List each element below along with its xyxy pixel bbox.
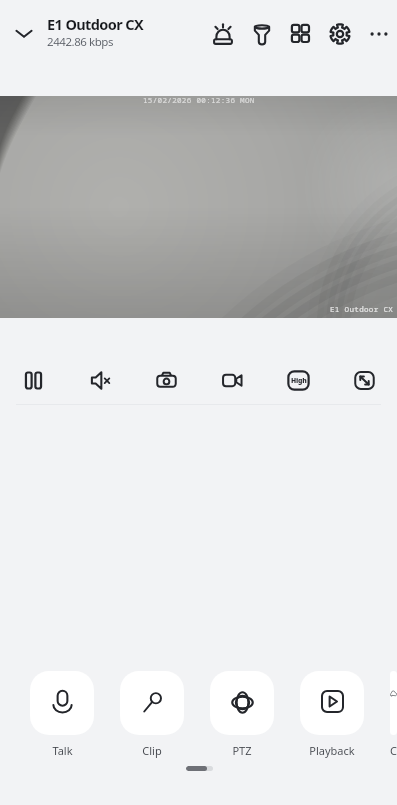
staticText: Cloud — [390, 743, 397, 758]
button[interactable]: Flashlight — [242, 14, 281, 53]
staticText: PTZ — [232, 743, 252, 758]
staticText: E1 Outdoor CX — [47, 14, 144, 34]
button[interactable]: Record — [199, 354, 265, 406]
staticText: 15/02/2026 00:12:36 MON — [143, 96, 255, 105]
button[interactable]: More options — [359, 14, 397, 53]
button[interactable]: Collapse — [6, 16, 42, 52]
button[interactable]: Pause — [0, 354, 67, 406]
button[interactable] — [210, 671, 274, 735]
staticText: Clip — [142, 743, 162, 758]
button[interactable] — [390, 671, 397, 735]
button[interactable]: Stream quality High — [265, 354, 331, 406]
button[interactable]: Settings — [320, 14, 359, 53]
button[interactable]: Fullscreen — [331, 354, 397, 406]
button[interactable] — [30, 671, 94, 735]
button[interactable]: Snapshot — [133, 354, 199, 406]
staticText: High — [291, 376, 307, 385]
staticText: Playback — [309, 743, 355, 758]
button[interactable] — [120, 671, 184, 735]
staticText: 2442.86 kbps — [47, 34, 113, 50]
staticText: Talk — [52, 743, 73, 758]
button[interactable]: Siren — [203, 14, 242, 53]
button[interactable] — [300, 671, 364, 735]
staticText: E1 Outdoor CX — [330, 304, 394, 314]
button[interactable]: Multi view — [281, 14, 320, 53]
button[interactable]: Unmute — [67, 354, 133, 406]
